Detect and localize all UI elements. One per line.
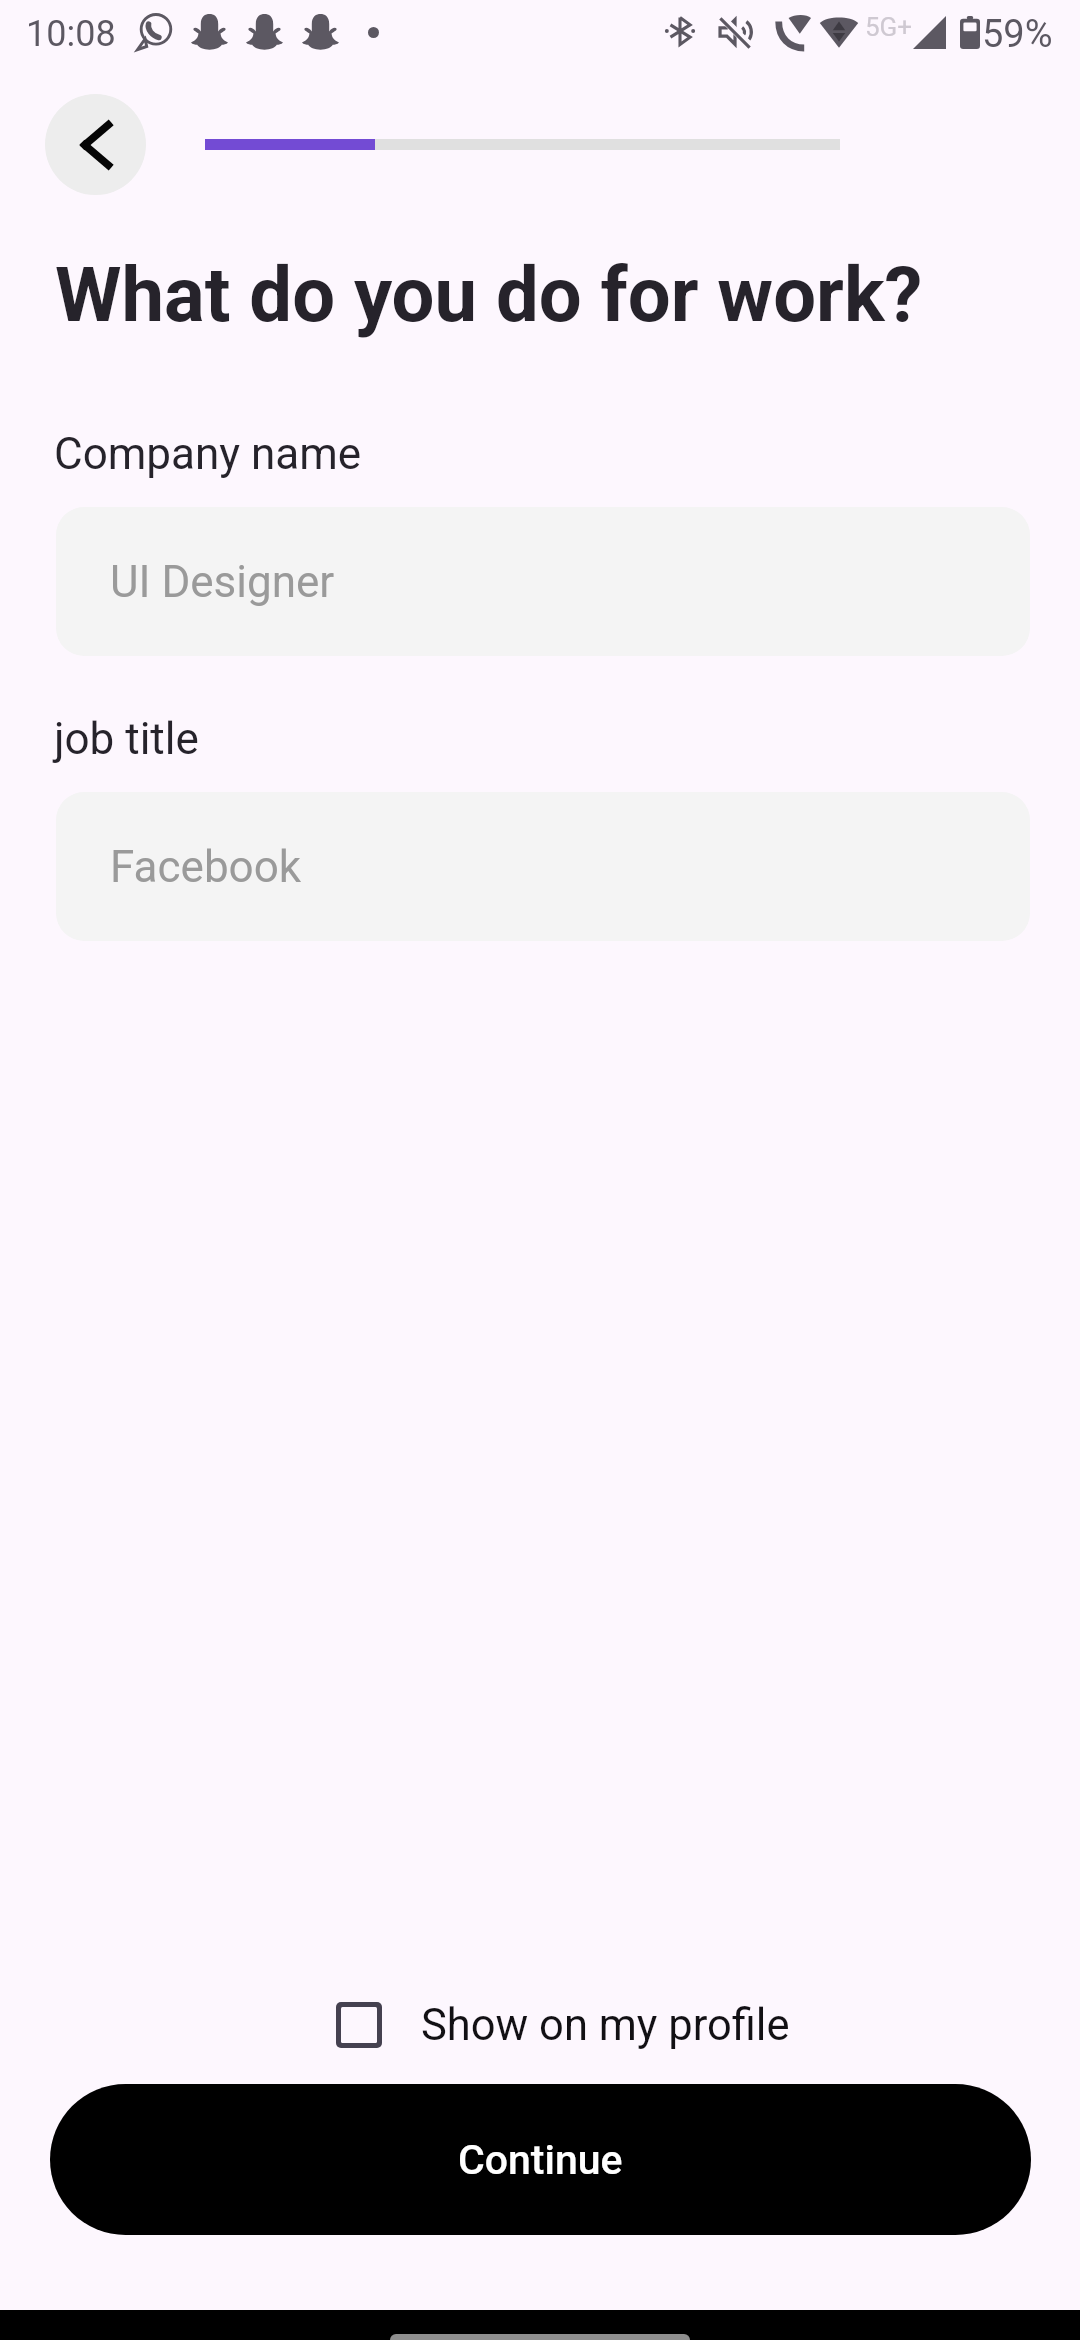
- button[interactable]: Show on my profile: [336, 1990, 790, 2060]
- staticText: 5G+: [865, 12, 913, 42]
- button[interactable]: UI Designer: [56, 507, 1030, 656]
- button[interactable]: Back: [45, 94, 146, 195]
- staticText: Continue: [458, 2136, 623, 2184]
- staticText: Show on my profile: [421, 2000, 790, 2051]
- staticText: Company name: [54, 428, 362, 480]
- button[interactable]: Facebook: [56, 792, 1030, 941]
- staticText: Facebook: [110, 841, 302, 893]
- staticText: What do you do for work?: [55, 250, 923, 339]
- staticText: job title: [54, 713, 199, 765]
- button[interactable]: Continue: [50, 2084, 1031, 2235]
- staticText: 10:08: [26, 13, 116, 55]
- staticText: 59%: [982, 12, 1053, 57]
- staticText: UI Designer: [110, 556, 335, 608]
